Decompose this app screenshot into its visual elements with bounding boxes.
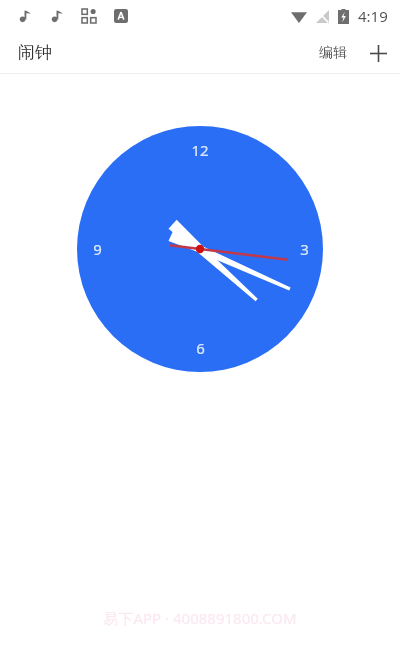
button[interactable]: 编辑 [309, 36, 357, 70]
button[interactable]: 12 [77, 126, 323, 372]
staticText: 12 [191, 140, 209, 160]
staticText: 9 [93, 239, 102, 259]
button[interactable]: Add alarm [357, 37, 400, 70]
staticText: 编辑 [319, 44, 347, 62]
staticText: 6 [196, 338, 205, 358]
staticText: 4:19 [358, 6, 388, 26]
staticText: 3 [300, 239, 309, 259]
staticText: 易下APP · 4008891800.COM [103, 608, 297, 628]
staticText: 闹钟 [18, 42, 52, 63]
